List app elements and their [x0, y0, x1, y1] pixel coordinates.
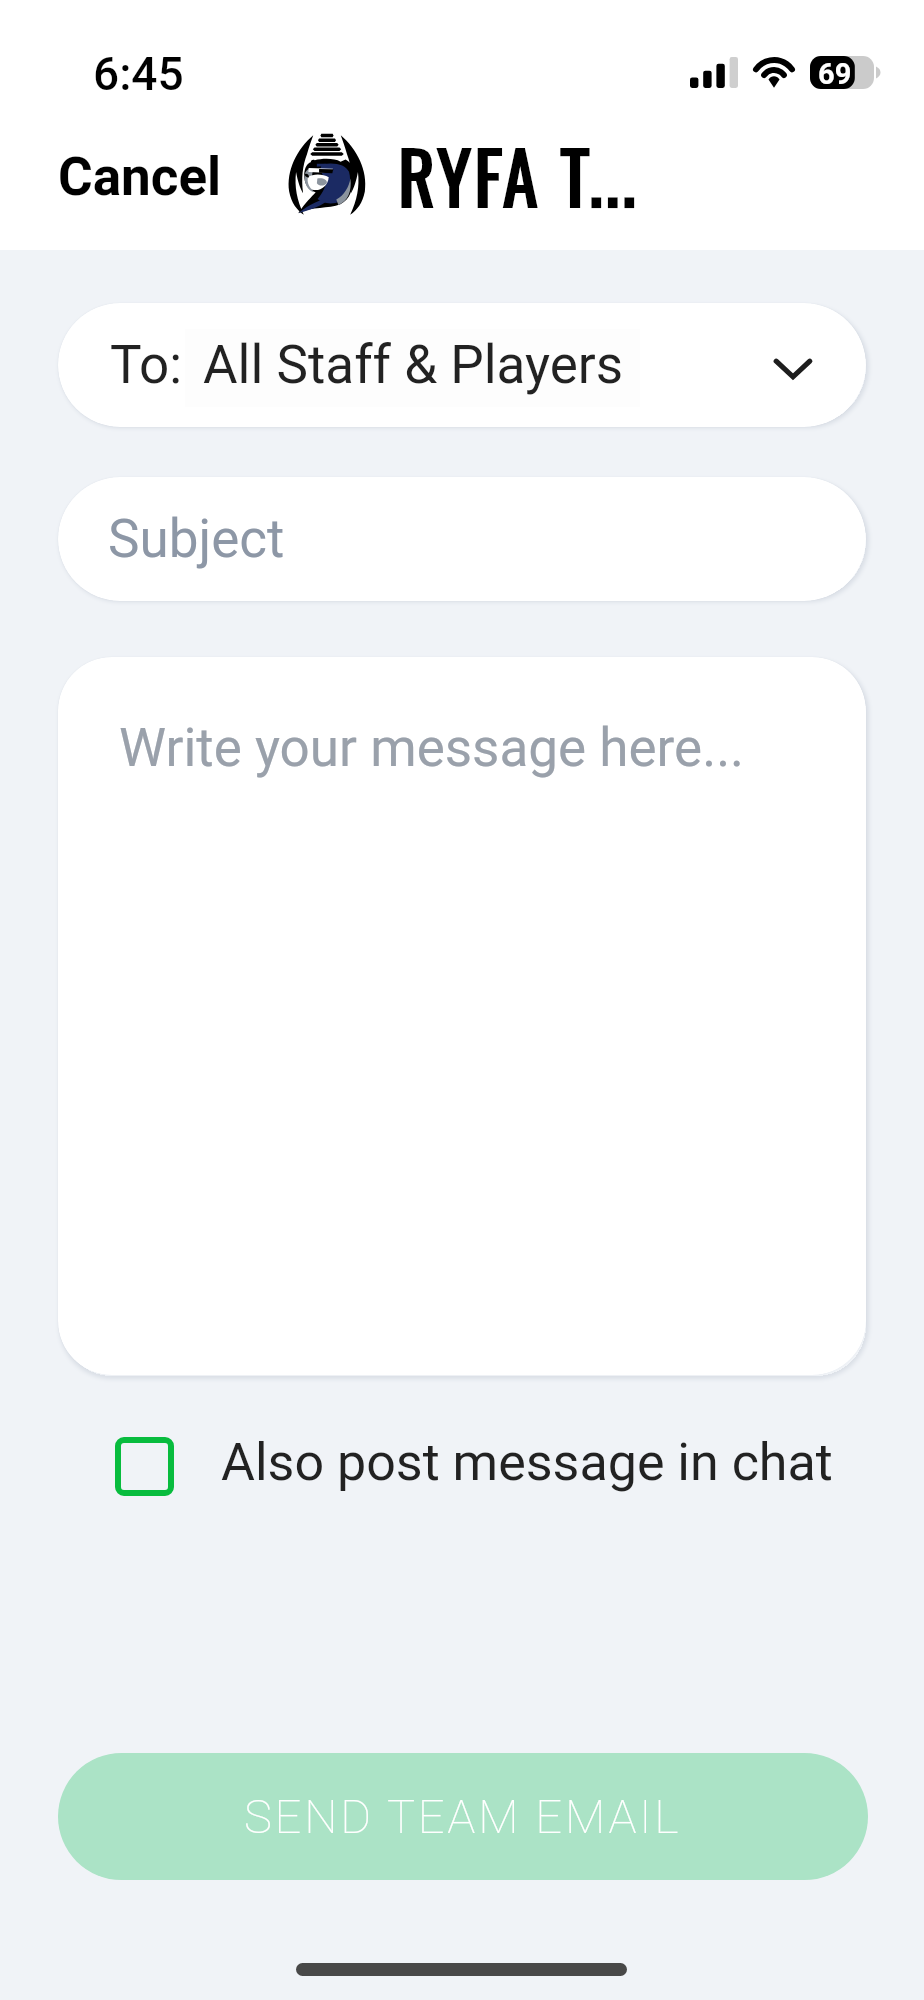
button[interactable]: RYFA Titans team logo: [284, 121, 611, 225]
button[interactable]: To:: [58, 303, 866, 427]
button[interactable]: Cancel: [40, 132, 240, 222]
button[interactable]: Subject: [58, 477, 866, 601]
staticText: 6:45: [93, 47, 184, 101]
button[interactable]: SEND TEAM EMAIL: [58, 1753, 868, 1880]
staticText: Write your message here...: [119, 717, 745, 779]
staticText: Subject: [108, 508, 285, 570]
staticText: Also post message in chat: [221, 1432, 833, 1493]
staticText: 69: [818, 57, 852, 91]
staticText: SEND TEAM EMAIL: [244, 1789, 682, 1844]
staticText: All Staff & Players: [203, 334, 624, 396]
button[interactable]: Write your message here...: [58, 657, 866, 1375]
button[interactable]: Also post message in chat: [115, 1422, 833, 1512]
other: RYFA Titans team logo: [284, 129, 370, 217]
button[interactable]: Choose recipients: [757, 333, 829, 405]
staticText: Cancel: [58, 146, 222, 208]
staticText: To:: [110, 334, 183, 396]
staticText: RYFA T...: [398, 122, 639, 226]
